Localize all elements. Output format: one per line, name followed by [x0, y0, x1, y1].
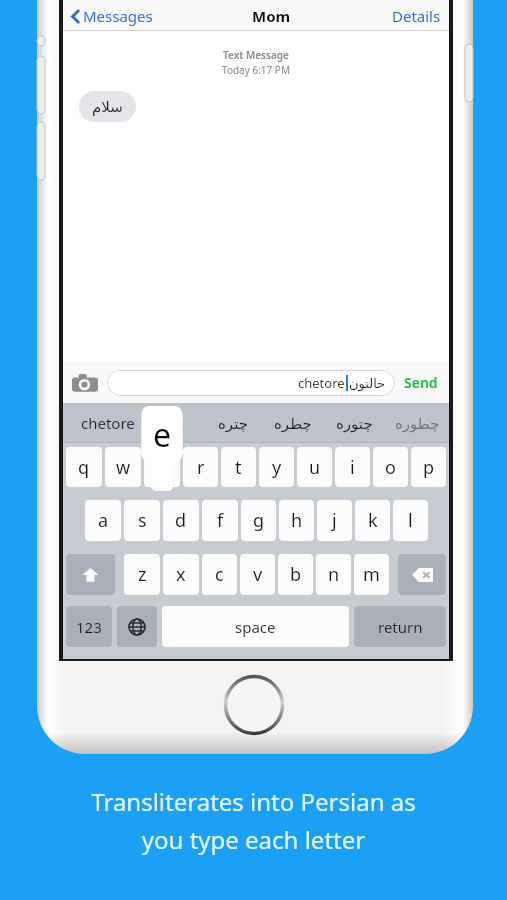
button[interactable]: Next keyboard: [117, 606, 157, 647]
staticText: سلام: [92, 98, 123, 115]
staticText: r: [197, 455, 205, 480]
staticText: حالتون: [349, 376, 386, 391]
button[interactable]: b: [278, 554, 313, 595]
staticText: x: [176, 562, 186, 587]
staticText: chetore: [81, 413, 135, 433]
button[interactable]: Delete: [398, 554, 446, 595]
button[interactable]: chetore: [107, 370, 395, 396]
button[interactable]: سلام: [79, 91, 136, 122]
button[interactable]: v: [240, 554, 275, 595]
button[interactable]: a: [85, 500, 121, 541]
staticText: v: [253, 562, 263, 587]
staticText: y: [272, 455, 282, 480]
staticText: k: [368, 508, 378, 533]
staticText: b: [290, 562, 302, 587]
button[interactable]: Send: [402, 368, 440, 397]
button[interactable]: x: [163, 554, 199, 595]
staticText: h: [291, 508, 303, 533]
staticText: chetore: [298, 374, 345, 392]
staticText: Details: [392, 6, 441, 26]
button[interactable]: g: [241, 500, 276, 541]
button[interactable]: k: [355, 500, 390, 541]
staticText: w: [116, 455, 131, 480]
button[interactable]: چتوره: [323, 403, 386, 443]
button[interactable]: y: [259, 447, 294, 487]
staticText: Today 6:17 PM: [63, 63, 449, 77]
button[interactable]: Camera: [72, 373, 98, 393]
staticText: چطوره: [395, 415, 440, 432]
staticText: q: [78, 455, 90, 480]
staticText: c: [215, 562, 224, 587]
button[interactable]: n: [316, 554, 351, 595]
staticText: u: [309, 455, 321, 480]
button[interactable]: چ: [152, 403, 203, 443]
staticText: چتره: [218, 415, 248, 432]
staticText: p: [423, 455, 435, 480]
button[interactable]: 123: [66, 606, 112, 647]
button[interactable]: chetore: [63, 403, 152, 443]
staticText: Messages: [83, 6, 153, 26]
staticText: a: [98, 508, 109, 533]
staticText: d: [175, 508, 187, 533]
button[interactable]: space: [162, 606, 349, 647]
button[interactable]: Details: [384, 1, 449, 31]
staticText: j: [332, 508, 337, 533]
staticText: Send: [404, 373, 438, 392]
button[interactable]: h: [279, 500, 314, 541]
staticText: Transliterates into Persian as: [0, 785, 507, 818]
staticText: z: [138, 562, 147, 587]
button[interactable]: o: [373, 447, 408, 487]
button[interactable]: u: [297, 447, 332, 487]
button[interactable]: f: [202, 500, 238, 541]
staticText: o: [385, 455, 396, 480]
button[interactable]: Messages: [63, 1, 159, 31]
button[interactable]: t: [221, 447, 256, 487]
button[interactable]: d: [163, 500, 199, 541]
button[interactable]: z: [124, 554, 160, 595]
staticText: n: [328, 562, 340, 587]
staticText: Mom: [252, 6, 291, 26]
button[interactable]: چطوره: [386, 403, 449, 443]
staticText: Text Message: [63, 48, 449, 62]
staticText: g: [253, 508, 265, 533]
staticText: e: [153, 413, 172, 457]
staticText: return: [378, 617, 423, 637]
staticText: t: [235, 455, 242, 480]
staticText: 123: [76, 617, 102, 637]
button[interactable]: m: [354, 554, 389, 595]
button[interactable]: r: [183, 447, 218, 487]
staticText: l: [408, 508, 413, 533]
button[interactable]: l: [393, 500, 428, 541]
button[interactable]: p: [411, 447, 446, 487]
staticText: m: [363, 562, 380, 587]
button[interactable]: w: [105, 447, 141, 487]
button[interactable]: i: [335, 447, 370, 487]
staticText: s: [138, 508, 147, 533]
staticText: چ: [173, 415, 183, 432]
button[interactable]: Shift: [66, 554, 115, 595]
button[interactable]: چتره: [203, 403, 263, 443]
staticText: چتوره: [336, 415, 373, 432]
button[interactable]: return: [354, 606, 446, 647]
button[interactable]: j: [317, 500, 352, 541]
button[interactable]: q: [66, 447, 102, 487]
button[interactable]: s: [124, 500, 160, 541]
staticText: i: [350, 455, 355, 480]
button[interactable]: چطره: [263, 403, 323, 443]
staticText: space: [235, 617, 276, 637]
button[interactable]: c: [202, 554, 237, 595]
staticText: f: [217, 508, 224, 533]
staticText: چطره: [274, 415, 312, 432]
staticText: you type each letter: [0, 823, 507, 856]
button[interactable]: e: [144, 447, 180, 487]
